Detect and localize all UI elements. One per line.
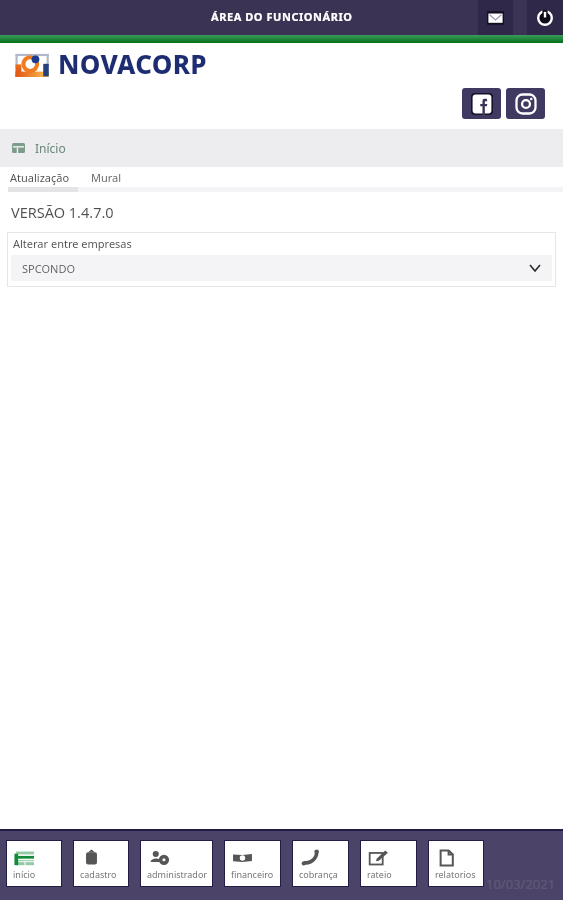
staticText: relatorios [435,868,476,880]
staticText: cobrança [299,868,338,880]
staticText: administrador [147,868,208,880]
button[interactable]: cobrança [293,841,348,886]
button[interactable]: cadastro [74,841,128,886]
button[interactable]: Instagram [506,88,545,119]
staticText: Início [35,140,66,156]
staticText: Atualização [10,170,70,185]
staticText: VERSÃO 1.4.7.0 [11,202,114,222]
button[interactable]: Mural [91,170,122,185]
staticText: ÁREA DO FUNCIONÁRIO [211,9,353,24]
button[interactable]: Mensagens [478,0,513,35]
button[interactable]: SPCONDO [11,255,552,281]
staticText: cadastro [80,868,117,880]
button[interactable]: Atualização [10,170,70,185]
staticText: Alterar entre empresas [13,236,132,251]
staticText: SPCONDO [22,261,75,276]
staticText: NOVACORP [58,46,207,81]
button[interactable]: relatorios [429,841,483,886]
button[interactable]: rateio [361,841,416,886]
staticText: 10/03/2021 [486,875,556,893]
button[interactable]: Facebook [462,88,501,119]
staticText: rateio [367,868,392,880]
button[interactable]: financeiro [225,841,280,886]
staticText: início [13,868,36,880]
button[interactable]: início [7,841,61,886]
button[interactable]: administrador [141,841,212,886]
staticText: financeiro [231,868,274,880]
staticText: Mural [91,170,122,185]
button[interactable]: Sair [527,0,563,35]
